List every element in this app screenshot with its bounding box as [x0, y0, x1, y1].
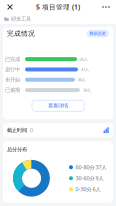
staticText: 截止时间 [7, 127, 27, 133]
button[interactable]: More [99, 0, 113, 14]
staticText: 5 项目管理 (1) [36, 3, 80, 11]
staticText: 总分分布 [7, 146, 27, 153]
button[interactable]: 截止时间 [3, 123, 113, 137]
staticText: 数据总览 [90, 31, 106, 36]
button[interactable]: Close [3, 0, 17, 14]
staticText: 30-60分 9人 [76, 175, 104, 182]
staticText: 已完成 [5, 56, 20, 62]
staticText: 34人 [83, 87, 91, 93]
staticText: 完成情况 [7, 29, 35, 38]
button[interactable]: 研发工具 [0, 14, 116, 24]
button[interactable]: 查看详情 [32, 100, 84, 111]
staticText: 40人 [78, 77, 86, 82]
staticText: 查看详情 [48, 102, 68, 109]
staticText: 已逾期 [5, 87, 20, 93]
staticText: 0 [30, 127, 33, 134]
staticText: 45人 [80, 56, 88, 62]
staticText: 未开始 [5, 76, 20, 83]
staticText: 60-80分 37人 [76, 164, 107, 171]
staticText: 研发工具 [11, 16, 31, 22]
button[interactable]: 数据总览 [87, 30, 109, 37]
staticText: 41人 [81, 67, 89, 72]
staticText: 0-30分 6人 [76, 186, 101, 193]
staticText: 进行中 [5, 66, 20, 73]
